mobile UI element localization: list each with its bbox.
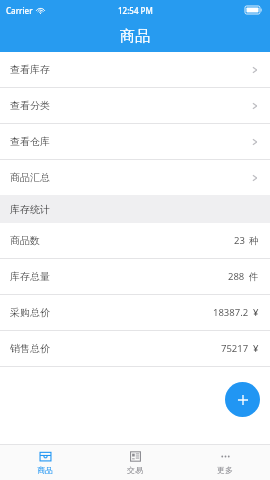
staticText: 商品 (120, 27, 150, 46)
staticText: 更多 (217, 465, 233, 475)
staticText: ¥ (253, 306, 259, 319)
staticText: 商品数 (10, 234, 40, 247)
button[interactable]: 采购总价 (0, 295, 270, 330)
staticText: 库存总量 (10, 270, 50, 283)
staticText: 商品 (37, 465, 53, 475)
staticText: 交易 (127, 465, 143, 475)
staticText: 件 (249, 271, 259, 283)
button[interactable]: 销售总价 (0, 331, 270, 366)
staticText: 库存统计 (10, 203, 50, 216)
button[interactable]: 库存总量 (0, 259, 270, 294)
staticText: 采购总价 (10, 306, 50, 319)
staticText: 销售总价 (10, 342, 50, 355)
button[interactable]: 查看库存 (0, 52, 270, 87)
staticText: 288 (228, 270, 245, 283)
staticText: 商品汇总 (10, 171, 50, 184)
staticText: 23 (234, 234, 245, 247)
staticText: 查看库存 (10, 63, 50, 76)
staticText: 12:54 PM (118, 5, 153, 16)
button[interactable]: 商品汇总 (0, 160, 270, 195)
staticText: 75217 (221, 342, 249, 355)
button[interactable]: 交易 (90, 444, 180, 480)
button[interactable]: 商品数 (0, 223, 270, 258)
staticText: 种 (249, 235, 259, 247)
staticText: Carrier (6, 5, 33, 16)
button[interactable]: Add (225, 382, 260, 417)
button[interactable]: 更多 (180, 444, 270, 480)
staticText: ¥ (253, 342, 259, 355)
button[interactable]: 查看仓库 (0, 124, 270, 159)
button[interactable]: 商品 (0, 444, 90, 480)
staticText: 18387.2 (213, 306, 249, 319)
button[interactable]: 查看分类 (0, 88, 270, 123)
staticText: 查看仓库 (10, 135, 50, 148)
staticText: 查看分类 (10, 99, 50, 112)
